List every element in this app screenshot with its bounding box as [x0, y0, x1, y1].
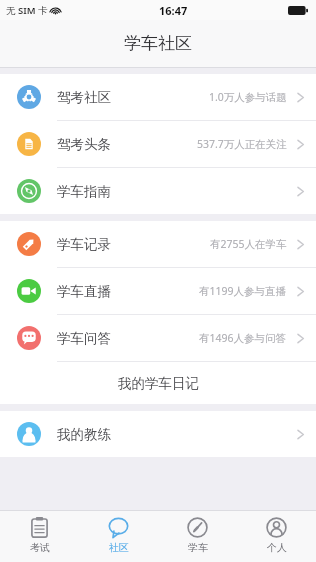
staticText: 学车: [188, 541, 208, 554]
staticText: 学车直播: [57, 283, 111, 300]
button[interactable]: 学车记录: [0, 221, 316, 267]
staticText: 学车问答: [57, 330, 111, 347]
button[interactable]: 驾考社区: [0, 74, 316, 120]
staticText: 驾考头条: [57, 136, 111, 153]
staticText: 学车记录: [57, 236, 111, 253]
staticText: 我的学车日记: [118, 375, 199, 392]
staticText: 1.0万人参与话题: [209, 90, 287, 104]
staticText: 我的教练: [57, 426, 111, 443]
staticText: 学车指南: [57, 183, 111, 200]
button[interactable]: 考试: [0, 511, 79, 554]
staticText: 有1199人参与直播: [199, 284, 287, 298]
button[interactable]: 驾考头条: [0, 121, 316, 167]
button[interactable]: 社区: [79, 511, 158, 554]
button[interactable]: 学车指南: [0, 168, 316, 214]
staticText: 个人: [267, 541, 287, 554]
staticText: 16:47: [159, 3, 188, 18]
button[interactable]: 个人: [237, 511, 316, 554]
button[interactable]: 我的学车日记: [0, 362, 316, 404]
button[interactable]: 我的教练: [0, 411, 316, 457]
button[interactable]: 学车问答: [0, 315, 316, 361]
staticText: 考试: [30, 541, 50, 554]
staticText: 537.7万人正在关注: [197, 137, 287, 151]
button[interactable]: 学车直播: [0, 268, 316, 314]
staticText: 无 SIM 卡: [6, 4, 48, 17]
staticText: 社区: [109, 541, 129, 554]
staticText: 有1496人参与问答: [199, 331, 287, 345]
staticText: 学车社区: [124, 33, 192, 54]
staticText: 有2755人在学车: [210, 237, 287, 251]
staticText: 驾考社区: [57, 89, 111, 106]
button[interactable]: 学车: [158, 511, 237, 554]
